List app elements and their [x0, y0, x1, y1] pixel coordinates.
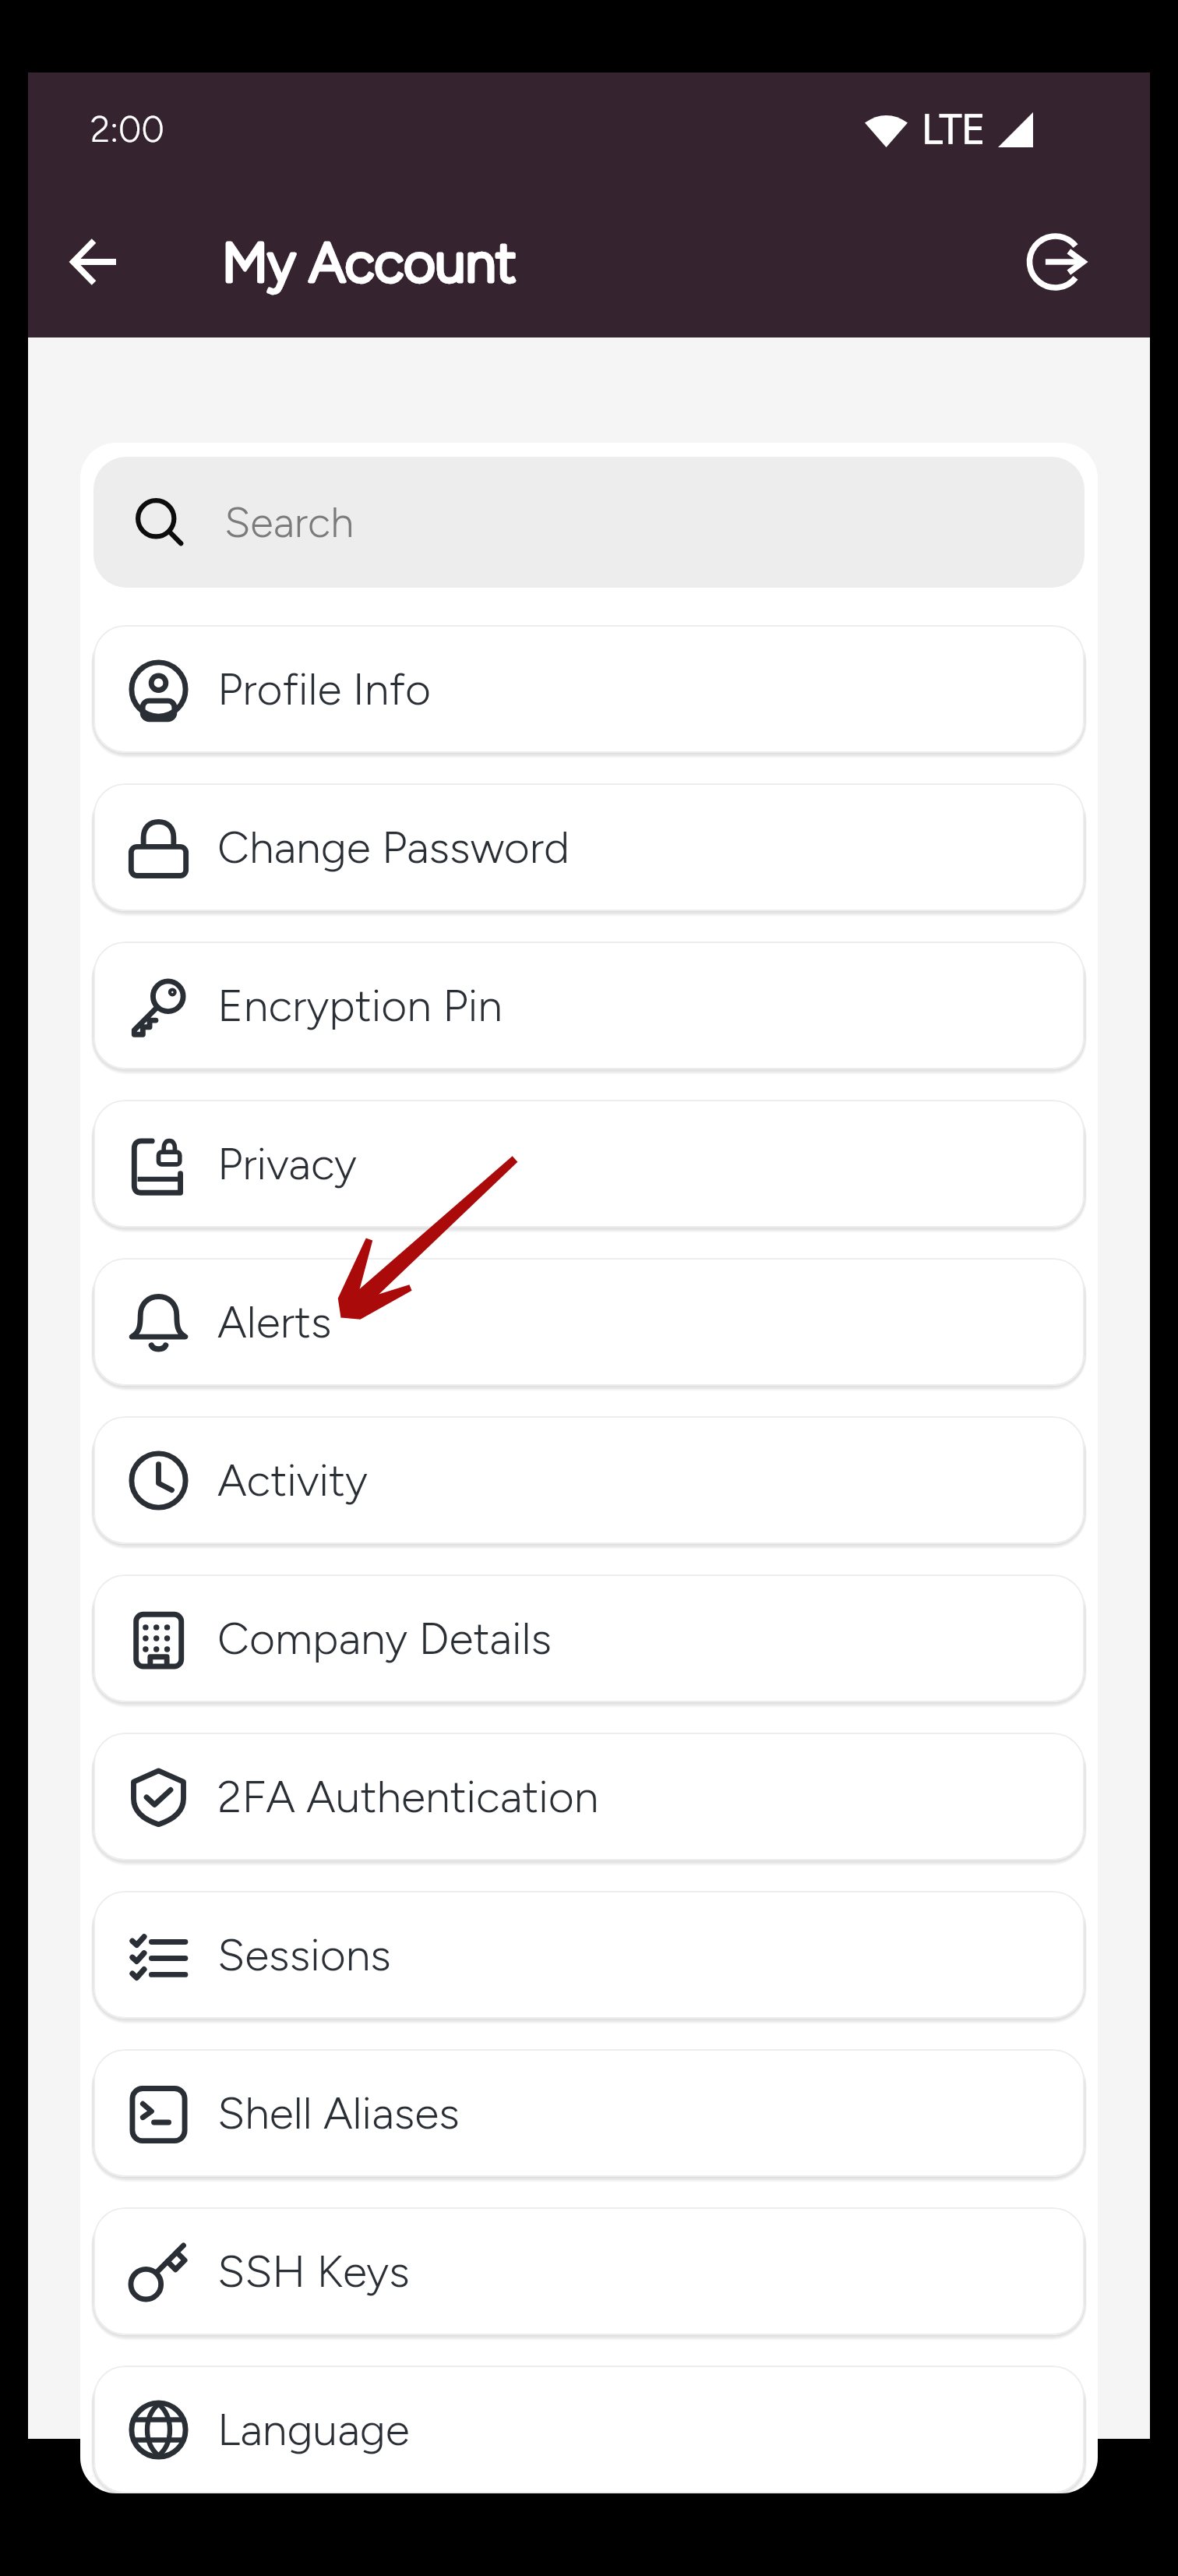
staticText: Language	[217, 2403, 410, 2456]
staticText: Encryption Pin	[217, 979, 503, 1032]
staticText: Privacy	[217, 1137, 357, 1190]
staticText: SSH Keys	[217, 2245, 410, 2298]
button[interactable]: Profile Info	[93, 625, 1085, 753]
button[interactable]: Sessions	[93, 1891, 1085, 2019]
staticText: Alerts	[217, 1295, 332, 1348]
staticText: Search	[224, 497, 354, 548]
button[interactable]: Search	[93, 457, 1085, 588]
staticText: Profile Info	[217, 663, 431, 716]
button[interactable]: SSH Keys	[93, 2207, 1085, 2335]
button[interactable]: Alerts	[93, 1258, 1085, 1386]
staticText: 2FA Authentication	[217, 1770, 599, 1823]
staticText: LTE	[922, 105, 986, 154]
button[interactable]: Log out	[1013, 219, 1099, 305]
button[interactable]: Back	[51, 219, 136, 305]
button[interactable]: Encryption Pin	[93, 942, 1085, 1069]
staticText: Sessions	[217, 1928, 391, 1981]
staticText: Shell Aliases	[217, 2087, 460, 2140]
button[interactable]: Language	[93, 2366, 1085, 2493]
button[interactable]: 2FA Authentication	[93, 1733, 1085, 1860]
staticText: Activity	[217, 1454, 368, 1507]
staticText: My Account	[222, 229, 517, 295]
staticText: My Account	[222, 229, 517, 295]
button[interactable]: Shell Aliases	[93, 2049, 1085, 2177]
button[interactable]: Change Password	[93, 783, 1085, 911]
staticText: Company Details	[217, 1612, 552, 1665]
staticText: Change Password	[217, 821, 570, 874]
button[interactable]: Activity	[93, 1416, 1085, 1544]
button[interactable]: Company Details	[93, 1574, 1085, 1702]
staticText: 2:00	[90, 108, 164, 150]
button[interactable]: Privacy	[93, 1100, 1085, 1228]
